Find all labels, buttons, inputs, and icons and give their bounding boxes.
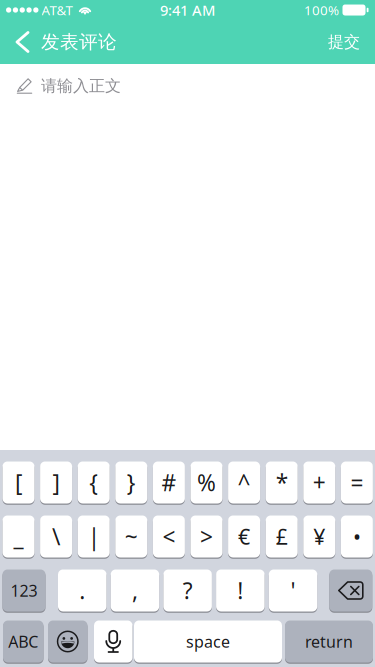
button[interactable]: { [78, 461, 110, 504]
button[interactable]: | [78, 515, 110, 558]
staticText: + [313, 467, 326, 497]
staticText: • [353, 522, 361, 551]
button[interactable]: ! [216, 569, 265, 612]
staticText: = [350, 467, 363, 497]
staticText: } [127, 467, 136, 497]
staticText: | [88, 521, 100, 551]
button[interactable]: 发表评论 [0, 20, 170, 64]
staticText: 9:41 AM [160, 0, 215, 20]
button[interactable]: ' [269, 569, 317, 612]
button[interactable]: € [228, 515, 260, 558]
staticText: £ [276, 522, 288, 551]
button[interactable]: _ [2, 515, 34, 558]
button[interactable]: 123 [2, 569, 45, 612]
staticText: ] [53, 467, 60, 497]
staticText: [ [15, 467, 22, 497]
staticText: ? [183, 575, 193, 605]
staticText: 100% [304, 1, 339, 19]
button[interactable]: ABC [3, 620, 43, 663]
staticText: \ [52, 521, 60, 551]
staticText: < [162, 521, 175, 551]
button[interactable]: # [153, 461, 185, 504]
staticText: { [89, 467, 98, 497]
button[interactable]: * [266, 461, 298, 504]
button[interactable]: 提交 [328, 20, 375, 64]
staticText: ^ [238, 467, 251, 497]
button[interactable]: } [115, 461, 147, 504]
staticText: % [197, 467, 216, 497]
button[interactable]: \ [40, 515, 72, 558]
button[interactable]: Delete [329, 569, 372, 612]
staticText: 发表评论 [41, 30, 117, 53]
staticText: 123 [10, 580, 37, 601]
staticText: ¥ [313, 522, 325, 551]
button[interactable]: = [341, 461, 373, 504]
staticText: ' [290, 575, 295, 605]
button[interactable]: return [285, 620, 373, 663]
staticText: * [276, 467, 288, 497]
staticText: € [238, 522, 250, 551]
button[interactable]: • [341, 515, 373, 558]
button[interactable]: Emoji [48, 620, 87, 663]
button[interactable]: space [134, 620, 282, 663]
staticText: 请输入正文 [41, 76, 121, 96]
staticText: space [186, 631, 230, 652]
staticText: ~ [125, 521, 138, 551]
button[interactable]: ] [40, 461, 72, 504]
staticText: # [161, 467, 176, 497]
button[interactable]: + [303, 461, 335, 504]
button[interactable]: > [190, 515, 222, 558]
button[interactable]: . [58, 569, 106, 612]
button[interactable]: , [111, 569, 159, 612]
button[interactable]: ^ [228, 461, 260, 504]
button[interactable]: [ [2, 461, 34, 504]
staticText: AT&T [41, 1, 72, 19]
button[interactable]: ¥ [303, 515, 335, 558]
staticText: 提交 [328, 32, 360, 52]
staticText: , [132, 575, 138, 605]
button[interactable]: ? [163, 569, 212, 612]
button[interactable]: % [190, 461, 222, 504]
button[interactable]: £ [266, 515, 298, 558]
staticText: ABC [8, 631, 38, 652]
staticText: . [79, 575, 85, 605]
staticText: _ [13, 521, 23, 551]
button[interactable]: ~ [115, 515, 147, 558]
button[interactable]: < [153, 515, 185, 558]
button[interactable]: Dictate [94, 620, 132, 663]
staticText: return [305, 631, 353, 652]
staticText: ! [237, 575, 243, 605]
staticText: > [200, 521, 213, 551]
